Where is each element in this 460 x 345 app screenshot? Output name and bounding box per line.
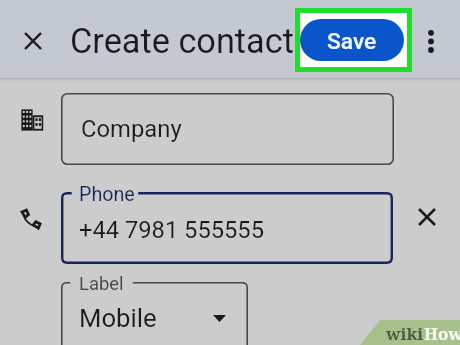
- staticText: Save: [327, 28, 377, 55]
- button[interactable]: Save: [300, 19, 404, 61]
- staticText: wiki: [386, 322, 424, 345]
- button[interactable]: More options: [412, 22, 450, 60]
- staticText: Company: [81, 115, 182, 143]
- button[interactable]: Mobile: [61, 273, 248, 345]
- staticText: How: [424, 322, 460, 345]
- button[interactable]: Close: [13, 21, 53, 61]
- button[interactable]: Clear phone number: [408, 198, 446, 236]
- staticText: Create contact: [70, 21, 294, 61]
- button[interactable]: Company: [61, 93, 394, 165]
- staticText: Label: [79, 273, 124, 295]
- staticText: Phone: [79, 183, 135, 206]
- staticText: +44 7981 555555: [79, 216, 264, 244]
- staticText: Mobile: [79, 303, 157, 333]
- button[interactable]: +44 7981 555555: [61, 183, 393, 264]
